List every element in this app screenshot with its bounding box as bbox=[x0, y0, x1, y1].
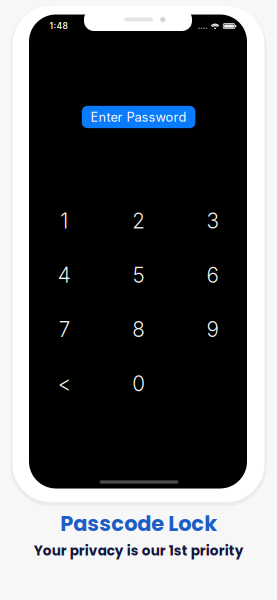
staticText: Passcode Lock bbox=[60, 509, 217, 538]
staticText: < bbox=[58, 371, 71, 396]
staticText: 1:48 bbox=[49, 21, 67, 31]
staticText: 1 bbox=[60, 208, 68, 233]
staticText: 7 bbox=[59, 317, 70, 342]
button[interactable]: < bbox=[28, 357, 100, 411]
button[interactable]: 6 bbox=[176, 248, 248, 302]
button[interactable]: 5 bbox=[103, 248, 175, 302]
staticText: 3 bbox=[206, 208, 218, 233]
staticText: 9 bbox=[206, 317, 218, 342]
staticText: Enter Password bbox=[91, 109, 187, 125]
button[interactable]: 2 bbox=[103, 194, 175, 248]
button[interactable]: 9 bbox=[176, 302, 248, 356]
button[interactable]: 8 bbox=[103, 302, 175, 356]
button[interactable]: 3 bbox=[176, 194, 248, 248]
staticText: Your privacy is our 1st priority bbox=[34, 541, 244, 560]
button[interactable]: Enter Password bbox=[82, 106, 195, 128]
staticText: 5 bbox=[133, 263, 145, 288]
staticText: 2 bbox=[132, 208, 145, 233]
staticText: 0 bbox=[132, 371, 145, 396]
staticText: 4 bbox=[58, 263, 71, 288]
button[interactable]: 4 bbox=[28, 248, 100, 302]
button[interactable]: 0 bbox=[103, 357, 175, 411]
staticText: 8 bbox=[132, 317, 145, 342]
staticText: 6 bbox=[206, 263, 218, 288]
button[interactable]: 7 bbox=[28, 302, 100, 356]
button[interactable]: 1 bbox=[28, 194, 100, 248]
